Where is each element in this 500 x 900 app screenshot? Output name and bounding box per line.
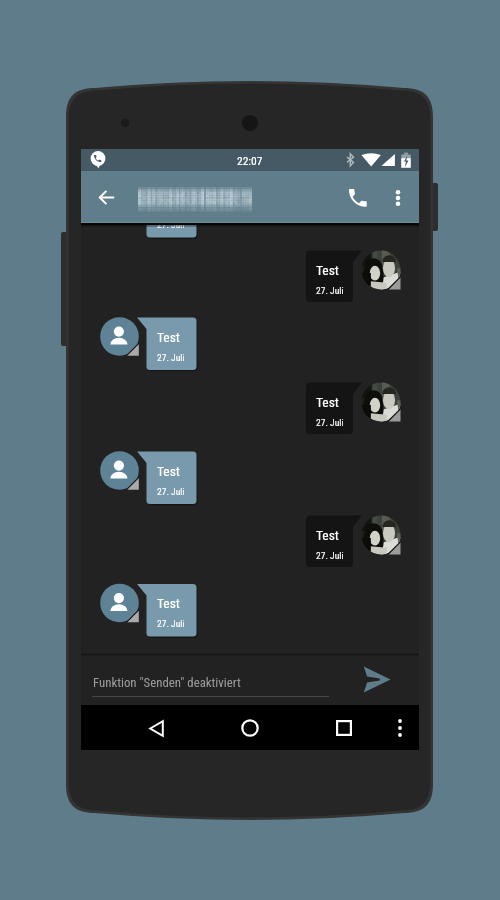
staticText: Test: [157, 329, 180, 345]
staticText: 27. Juli: [316, 417, 344, 428]
staticText: 27. Juli: [157, 352, 185, 363]
button[interactable]: Back: [84, 174, 130, 220]
staticText: 27. Juli: [316, 550, 344, 561]
staticText: Test: [316, 394, 339, 410]
staticText: 27. Juli: [157, 618, 185, 629]
button[interactable]: More options: [382, 710, 418, 746]
button[interactable]: Back: [134, 706, 178, 750]
staticText: 22:07: [237, 154, 263, 167]
staticText: Test: [157, 463, 180, 479]
button[interactable]: Call: [335, 175, 381, 221]
button[interactable]: Send: [357, 659, 397, 699]
staticText: 27. Juli: [157, 486, 185, 497]
button[interactable]: Funktion "Senden" deaktiviert: [92, 668, 329, 700]
staticText: Test: [157, 595, 180, 611]
staticText: 27. Juli: [157, 223, 185, 230]
staticText: 27. Juli: [316, 285, 344, 296]
button[interactable]: Home: [228, 706, 272, 750]
button[interactable]: Recents: [322, 706, 366, 750]
staticText: Test: [316, 527, 339, 543]
staticText: Test: [316, 262, 339, 278]
staticText: Funktion "Senden" deaktiviert: [93, 675, 241, 690]
button[interactable]: More options: [380, 175, 416, 221]
